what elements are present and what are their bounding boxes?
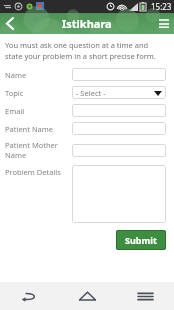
- button[interactable]: [72, 165, 166, 223]
- button[interactable]: Back: [0, 13, 20, 34]
- staticText: Topic: [5, 88, 24, 98]
- staticText: Patient Mother Name: [5, 140, 72, 160]
- button[interactable]: [72, 122, 166, 135]
- button[interactable]: [72, 104, 166, 117]
- staticText: Submit: [125, 234, 157, 246]
- button[interactable]: Back: [0, 282, 58, 310]
- button[interactable]: Recent apps: [116, 282, 174, 310]
- staticText: You must ask one question at a time and …: [5, 40, 166, 61]
- staticText: 15:23: [151, 1, 172, 12]
- staticText: - Select -: [76, 88, 106, 98]
- button[interactable]: Home: [58, 282, 116, 310]
- staticText: Istikhara: [62, 16, 112, 31]
- staticText: Patient Name: [5, 124, 54, 134]
- button[interactable]: Menu: [154, 13, 174, 34]
- staticText: Email: [5, 106, 25, 116]
- button[interactable]: Submit: [116, 230, 166, 250]
- staticText: Name: [5, 70, 27, 80]
- button[interactable]: [72, 68, 166, 81]
- staticText: Problem Details: [5, 167, 61, 177]
- button[interactable]: - Select -: [72, 86, 166, 99]
- button[interactable]: [72, 144, 166, 157]
